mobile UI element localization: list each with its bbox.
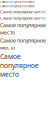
staticText: Самое популярное место [0, 15, 45, 21]
staticText: Самое популярное место [0, 37, 46, 51]
staticText: Самое популярное место [0, 22, 46, 36]
staticText: Самое популярное место [0, 0, 35, 3]
staticText: Самое популярное место [0, 52, 39, 79]
staticText: Самое популярное место [0, 9, 45, 14]
staticText: Самое популярное место [0, 4, 35, 8]
